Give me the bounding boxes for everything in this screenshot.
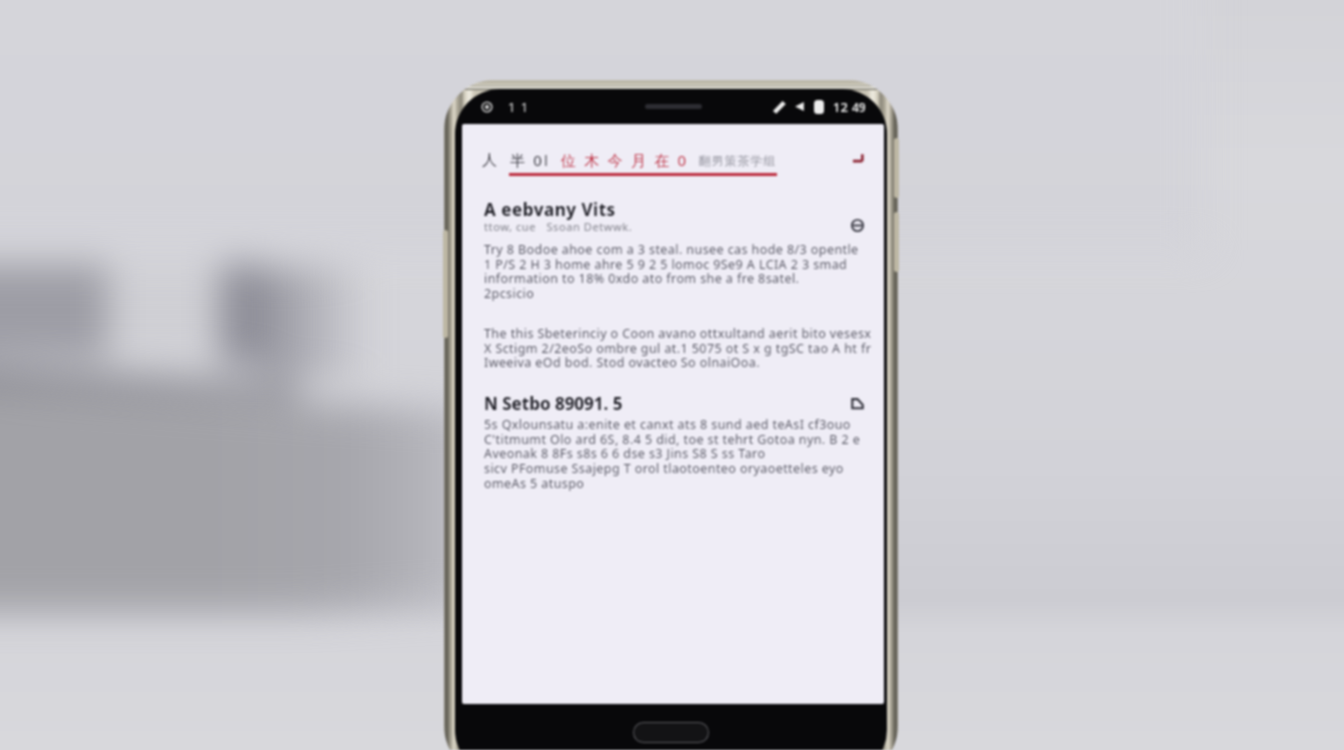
button[interactable]: Home [634, 723, 708, 742]
staticText: X Sctigm 2/2eoSo ombre gul at.1 5075 ot … [484, 340, 872, 357]
staticText: C'titmumt Olo ard 6S, 8.4 5 did, toe st … [484, 431, 861, 448]
staticText: ttow, cue Ssoan Detwwk. [484, 219, 633, 234]
staticText: 5s Qxlounsatu a:enite et canxt ats 8 sun… [484, 416, 851, 433]
staticText: 1 P/S 2 H 3 home ahre 5 9 2 5 lomoc 9Se9… [484, 256, 848, 273]
staticText: Iweeiva eOd bod. Stod ovacteo So olnaiOo… [484, 354, 760, 371]
staticText: A eebvany Vits [484, 198, 616, 221]
staticText: omeAs 5 atuspo [484, 475, 585, 492]
staticText: 2pcsicio [484, 285, 535, 302]
staticText: The this Sbeterinciy o Coon avano ottxul… [484, 325, 872, 342]
button[interactable]: Hide story [848, 216, 866, 234]
button[interactable]: 半 0l [510, 150, 551, 170]
staticText: information to 18% 0xdo ato from she a f… [484, 270, 800, 287]
staticText: Aveonak 8 8Fs s8s 6 6 dse s3 Jins S8 S s… [484, 445, 766, 462]
staticText: Try 8 Bodoe ahoe com a 3 steal. nusee ca… [484, 241, 859, 258]
button[interactable]: Bookmark [848, 394, 866, 412]
staticText: 12 [833, 98, 848, 116]
staticText: N Setbo 89091. 5 [484, 392, 623, 415]
button[interactable]: 位 木 今 月 在 0 [561, 150, 689, 170]
staticText: 1 1 [508, 98, 530, 116]
button[interactable]: 人 [482, 151, 497, 170]
staticText: sicv PFomuse Ssajepg T orol tlaotoenteo … [484, 460, 844, 477]
button[interactable]: More tabs [850, 150, 866, 166]
button[interactable]: 翻男策茶学组 [698, 153, 776, 168]
staticText: 49 [852, 99, 866, 115]
